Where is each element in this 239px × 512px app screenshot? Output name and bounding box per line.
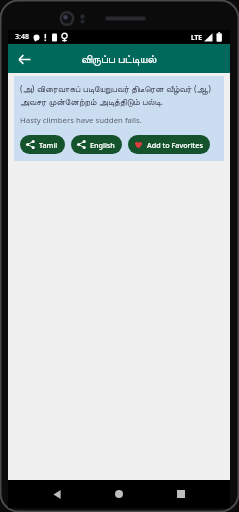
staticText: 3:48 (15, 32, 29, 42)
button[interactable]: Home (106, 481, 132, 507)
button[interactable]: English (71, 135, 122, 154)
button[interactable]: Back (12, 47, 36, 71)
button[interactable]: Add to Favorites (128, 135, 210, 154)
staticText: Add to Favorites (147, 140, 203, 150)
staticText: Hasty climbers have sudden falls. (20, 115, 142, 126)
staticText: English (90, 140, 115, 150)
staticText: LTE (191, 33, 202, 42)
button[interactable]: Back (44, 481, 70, 507)
staticText: விருப்ப பட்டியல் (81, 51, 157, 67)
staticText: (அ) விரைவாகப் படியேறுபவர் திடீரென வீழ்வர… (20, 83, 218, 108)
button[interactable]: Recent apps (168, 481, 194, 507)
staticText: Tamil (39, 140, 58, 150)
button[interactable]: Tamil (20, 135, 65, 154)
